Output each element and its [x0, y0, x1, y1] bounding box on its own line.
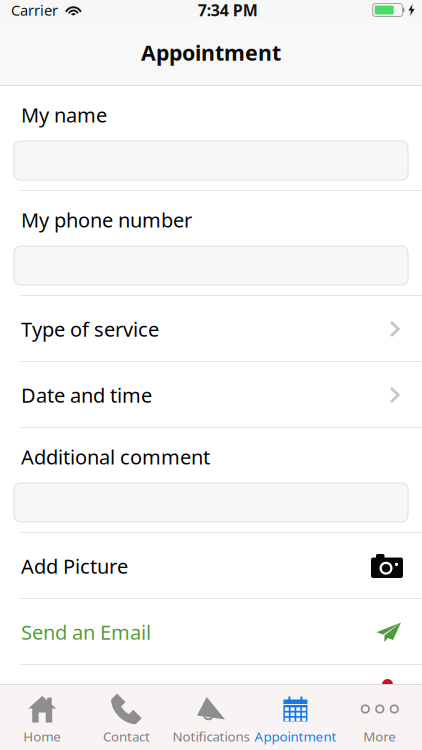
button[interactable]: Date and time — [0, 362, 422, 428]
staticText: More — [363, 727, 396, 745]
button[interactable]: More — [338, 684, 422, 750]
button[interactable]: Home — [0, 684, 84, 750]
button[interactable]: Appointment — [253, 684, 338, 750]
button[interactable]: Type of service — [0, 296, 422, 362]
staticText: Type of service — [21, 315, 159, 343]
staticText: Notifications — [172, 727, 249, 745]
staticText: Add Picture — [21, 552, 128, 580]
staticText: Contact — [103, 727, 150, 745]
staticText: Appointment — [141, 38, 281, 67]
staticText: Send an Email — [21, 618, 151, 646]
staticText: Appointment — [254, 727, 336, 745]
staticText: My name — [21, 101, 107, 128]
staticText: Carrier — [11, 0, 58, 20]
staticText: Home — [23, 727, 61, 745]
button[interactable]: Notifications — [169, 684, 253, 750]
staticText: My phone number — [21, 206, 192, 233]
staticText: Additional comment — [21, 443, 210, 470]
button[interactable]: Contact — [84, 684, 169, 750]
staticText: Date and time — [21, 381, 152, 409]
button[interactable]: Send an Email — [0, 599, 422, 665]
staticText: 7:34 PM — [198, 0, 258, 21]
button[interactable]: Add Picture — [0, 533, 422, 599]
